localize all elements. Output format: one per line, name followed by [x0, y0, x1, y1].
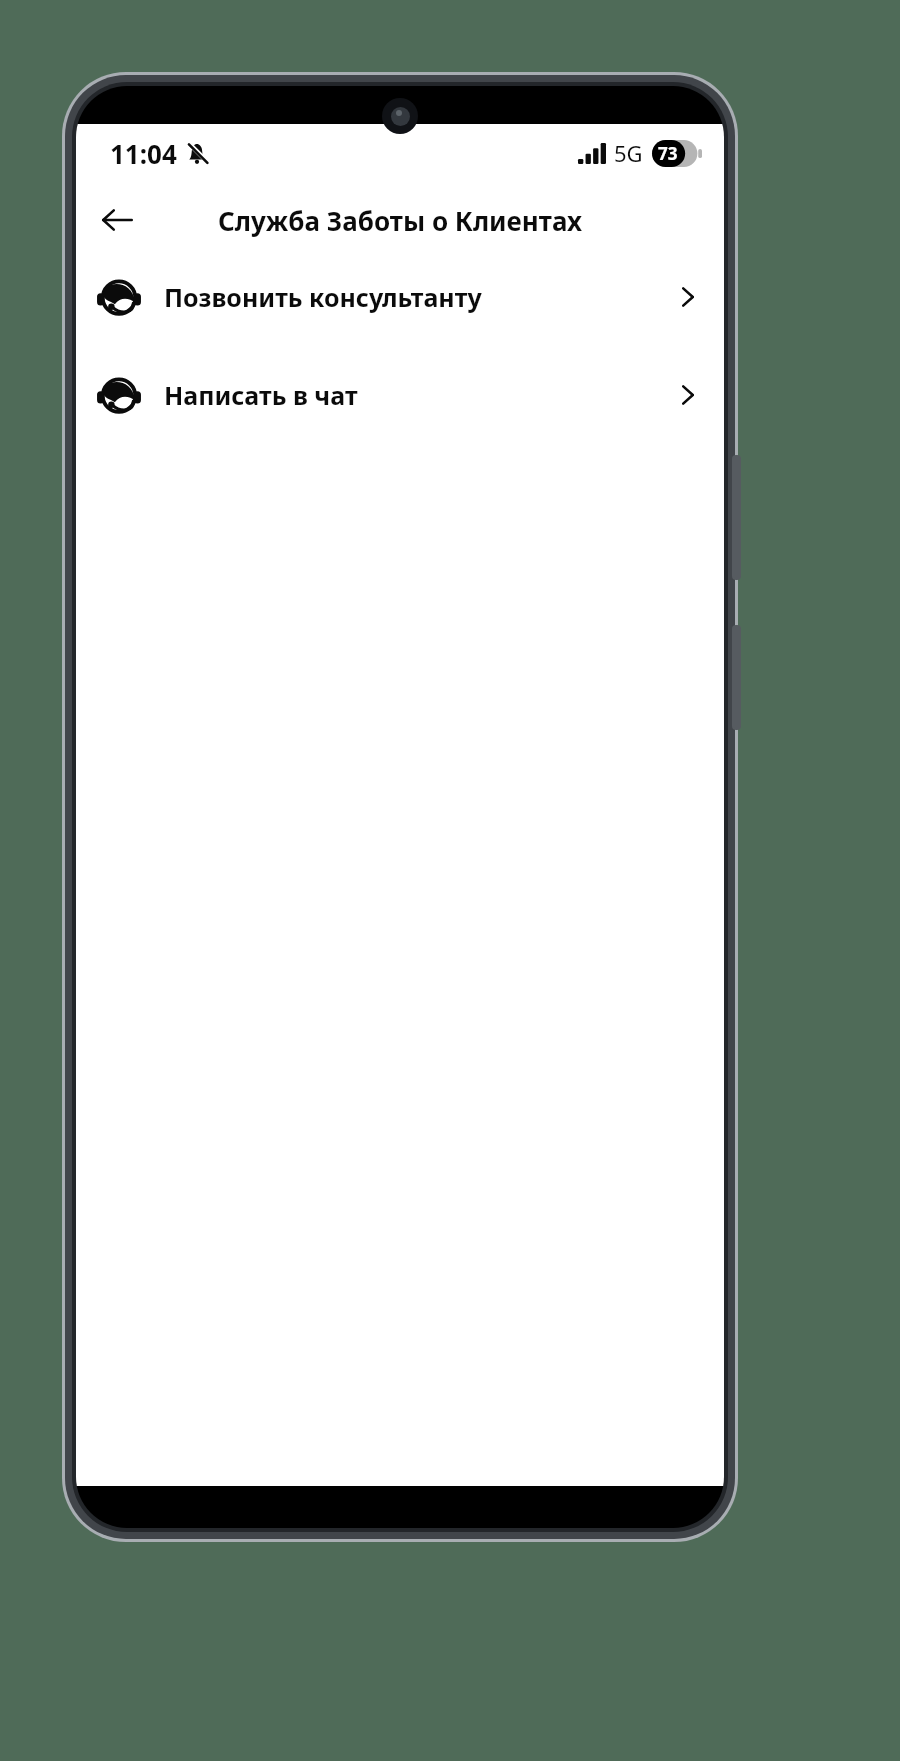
staticText: Служба Заботы о Клиентах	[218, 203, 582, 238]
button[interactable]: Написать в чат	[76, 362, 724, 428]
staticText: 11:04	[110, 136, 177, 171]
staticText: 5G	[614, 138, 643, 168]
staticText: Написать в чат	[164, 378, 676, 412]
button[interactable]: Назад	[88, 191, 146, 249]
staticText: Позвонить консультанту	[164, 280, 676, 314]
button[interactable]: Позвонить консультанту	[76, 264, 724, 330]
staticText: 73	[658, 142, 678, 165]
